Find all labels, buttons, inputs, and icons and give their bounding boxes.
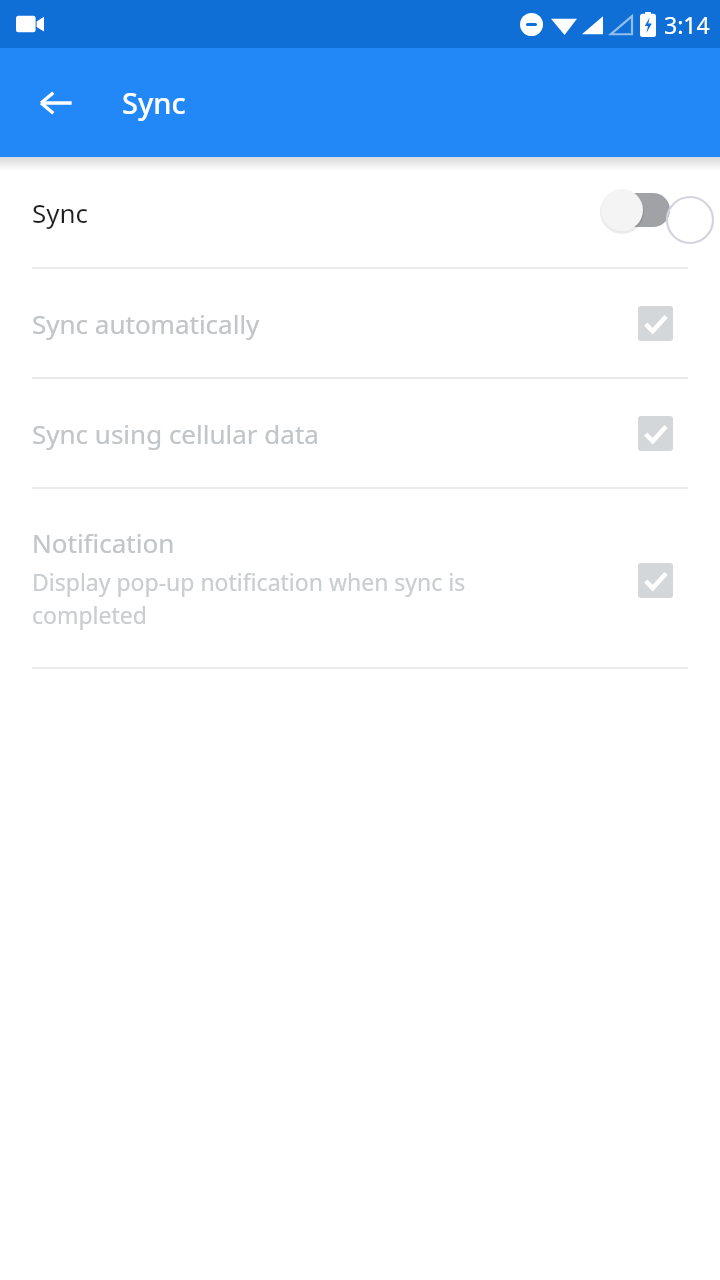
button[interactable]: Back (24, 71, 88, 135)
button[interactable]: Sync (0, 157, 720, 267)
staticText: Sync automatically (32, 306, 260, 341)
staticText: Notification (32, 525, 175, 560)
button[interactable]: Sync using cellular data (0, 379, 720, 487)
button[interactable]: Sync automatically (0, 269, 720, 377)
button[interactable]: Notification (0, 489, 720, 667)
staticText: Sync (32, 195, 89, 230)
staticText: Sync (122, 83, 186, 122)
staticText: Sync using cellular data (32, 416, 319, 451)
staticText: Display pop-up notification when sync is… (32, 566, 560, 631)
staticText: 3:14 (664, 9, 710, 40)
